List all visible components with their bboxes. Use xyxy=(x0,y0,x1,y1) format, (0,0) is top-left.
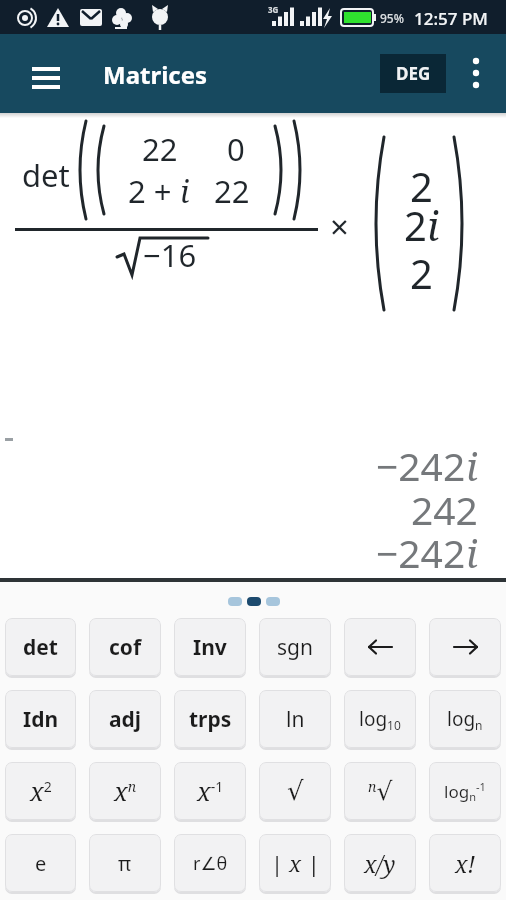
staticText: logn xyxy=(447,706,483,733)
button[interactable]: cof xyxy=(89,618,161,676)
button[interactable]: x2 xyxy=(5,762,76,820)
staticText: adj xyxy=(109,705,142,734)
button[interactable]: det xyxy=(5,618,76,676)
staticText: logn-1 xyxy=(444,779,486,804)
staticText: xn xyxy=(114,774,137,808)
staticText: x xyxy=(289,848,302,878)
staticText: 22 xyxy=(142,128,178,170)
staticText: 2 xyxy=(410,159,433,213)
button[interactable]: adj xyxy=(89,690,161,748)
staticText: x-1 xyxy=(197,774,224,808)
button[interactable]: √ xyxy=(259,762,331,820)
staticText: i xyxy=(427,198,440,252)
staticText: −16 xyxy=(143,234,197,276)
button[interactable]: trps xyxy=(174,690,246,748)
button[interactable]: logn-1 xyxy=(429,762,501,820)
staticText: 2 xyxy=(410,246,433,300)
staticText: 12:57 PM xyxy=(414,7,488,30)
staticText: log10 xyxy=(359,706,401,733)
staticText: 22 xyxy=(214,170,250,212)
button[interactable]: x-1 xyxy=(174,762,246,820)
button[interactable]: e xyxy=(5,834,76,892)
button[interactable]: DEG xyxy=(380,54,446,93)
staticText: 0 xyxy=(227,128,245,170)
button[interactable]: Idn xyxy=(5,690,76,748)
button[interactable]: | xyxy=(259,834,331,892)
staticText: det xyxy=(23,633,58,662)
staticText: x! xyxy=(455,848,476,879)
staticText: sgn xyxy=(277,633,313,662)
staticText: det xyxy=(22,154,70,196)
button[interactable]: π xyxy=(89,834,161,892)
staticText: ln xyxy=(286,705,305,734)
staticText: i xyxy=(180,170,190,212)
button[interactable]: r∠θ xyxy=(174,834,246,892)
button[interactable]: ln xyxy=(259,690,331,748)
staticText: 2 xyxy=(404,198,427,252)
button[interactable]: log10 xyxy=(344,690,416,748)
staticText: x2 xyxy=(30,774,52,808)
staticText: | xyxy=(271,848,289,878)
button[interactable] xyxy=(22,63,68,93)
staticText: 95% xyxy=(380,10,404,26)
staticText: 3G xyxy=(268,4,279,15)
staticText: Idn xyxy=(23,705,59,734)
button[interactable]: sgn xyxy=(259,618,331,676)
staticText: | xyxy=(302,848,320,878)
staticText: √ xyxy=(287,776,304,806)
button[interactable] xyxy=(429,618,501,676)
button[interactable]: x/y xyxy=(344,834,416,892)
staticText: Inv xyxy=(193,633,227,662)
staticText: × xyxy=(330,204,349,249)
staticText: e xyxy=(35,850,47,877)
staticText: 242 xyxy=(411,483,478,536)
staticText: 2 + xyxy=(128,170,180,212)
staticText: DEG xyxy=(396,62,431,85)
staticText: r∠θ xyxy=(193,851,228,876)
staticText: i xyxy=(466,439,478,492)
staticText: π xyxy=(118,850,132,877)
staticText: trps xyxy=(189,705,232,734)
button[interactable]: n√ xyxy=(344,762,416,820)
staticText: −242 xyxy=(376,439,466,492)
button[interactable]: xn xyxy=(89,762,161,820)
staticText: x/y xyxy=(364,848,396,879)
button[interactable]: x! xyxy=(429,834,501,892)
button[interactable] xyxy=(458,56,494,92)
staticText: −242 xyxy=(376,526,466,579)
staticText: i xyxy=(466,526,478,579)
staticText: n√ xyxy=(368,777,393,806)
button[interactable] xyxy=(344,618,416,676)
staticText: cof xyxy=(109,633,142,662)
button[interactable]: Inv xyxy=(174,618,246,676)
button[interactable]: logn xyxy=(429,690,501,748)
staticText: Matrices xyxy=(103,58,208,91)
